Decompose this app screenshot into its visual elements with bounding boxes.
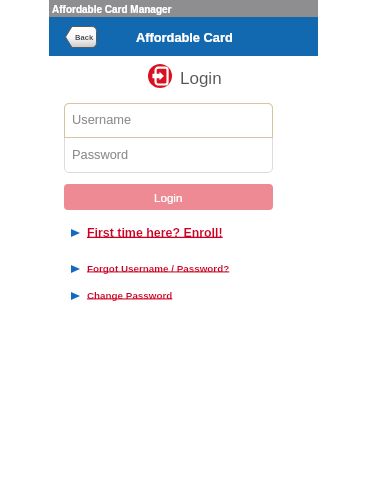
staticText: Back <box>75 33 94 41</box>
staticText: Login <box>154 191 183 204</box>
staticText: Change Password <box>87 290 173 301</box>
button[interactable]: Password <box>64 138 273 173</box>
button[interactable]: Login <box>64 184 273 210</box>
staticText: Login <box>180 69 222 88</box>
staticText: Password <box>72 147 129 161</box>
button[interactable]: Change Password <box>71 286 173 304</box>
staticText: First time here? Enroll! <box>87 226 223 240</box>
staticText: Affordable Card <box>136 30 233 44</box>
button[interactable]: Username <box>64 103 273 138</box>
button[interactable]: First time here? Enroll! <box>71 224 223 242</box>
button[interactable]: Forgot Username / Password? <box>71 259 230 277</box>
staticText: Affordable Card Manager <box>52 4 172 15</box>
staticText: Username <box>72 112 132 126</box>
button[interactable]: Back <box>65 26 97 48</box>
staticText: Forgot Username / Password? <box>87 263 230 274</box>
